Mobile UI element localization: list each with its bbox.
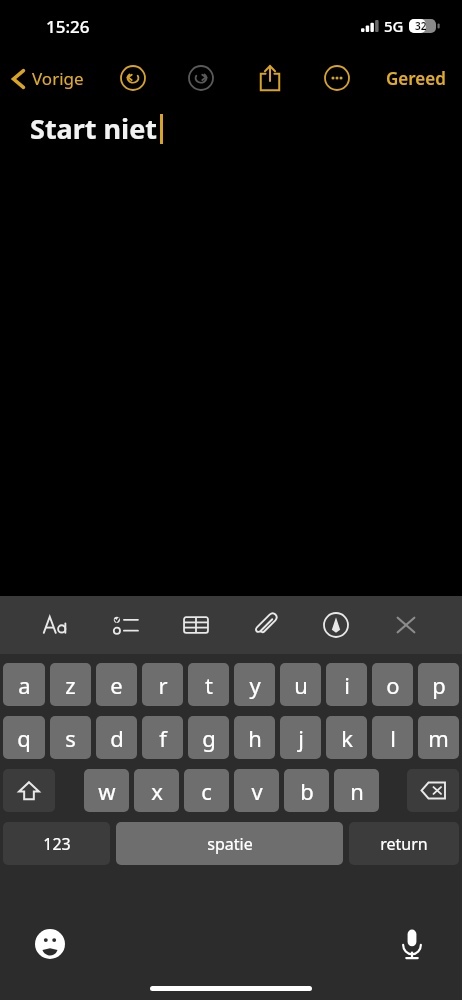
staticText: o xyxy=(386,670,400,700)
staticText: a xyxy=(18,670,31,700)
staticText: 15:26 xyxy=(46,15,90,38)
button[interactable]: p xyxy=(418,663,459,706)
button[interactable]: e xyxy=(96,663,137,706)
button[interactable]: l xyxy=(372,716,413,759)
button[interactable]: return xyxy=(349,822,459,865)
staticText: v xyxy=(251,776,263,806)
staticText: f xyxy=(159,723,167,753)
button[interactable]: Dictation xyxy=(390,922,434,966)
staticText: z xyxy=(65,670,76,700)
button[interactable]: y xyxy=(234,663,275,706)
button[interactable]: x xyxy=(134,769,179,812)
button[interactable]: spatie xyxy=(116,822,343,865)
button[interactable]: Text format xyxy=(34,603,78,647)
button[interactable]: c xyxy=(184,769,229,812)
staticText: l xyxy=(390,723,396,753)
staticText: m xyxy=(428,723,449,753)
button[interactable]: u xyxy=(280,663,321,706)
button[interactable]: o xyxy=(372,663,413,706)
button[interactable]: j xyxy=(280,716,321,759)
button[interactable]: t xyxy=(188,663,229,706)
button[interactable]: r xyxy=(142,663,183,706)
staticText: Vorige xyxy=(32,67,84,90)
button[interactable]: w xyxy=(84,769,129,812)
button[interactable]: m xyxy=(418,716,459,759)
staticText: g xyxy=(202,723,216,753)
staticText: 5G xyxy=(384,16,404,36)
button[interactable]: f xyxy=(142,716,183,759)
button[interactable]: q xyxy=(3,716,45,759)
staticText: return xyxy=(380,833,428,855)
button[interactable]: g xyxy=(188,716,229,759)
button[interactable]: v xyxy=(234,769,279,812)
staticText: spatie xyxy=(207,833,253,855)
button[interactable]: Share xyxy=(248,56,292,100)
staticText: w xyxy=(98,776,116,806)
staticText: h xyxy=(248,723,262,753)
button[interactable]: h xyxy=(234,716,275,759)
button[interactable]: 123 xyxy=(3,822,110,865)
button[interactable]: z xyxy=(50,663,91,706)
staticText: x xyxy=(151,776,163,806)
button[interactable]: Attach xyxy=(244,603,288,647)
button[interactable]: Gereed xyxy=(380,61,452,96)
staticText: Start niet xyxy=(30,110,158,147)
button[interactable]: Close keyboard xyxy=(384,603,428,647)
staticText: n xyxy=(350,776,364,806)
staticText: k xyxy=(341,723,353,753)
staticText: t xyxy=(205,670,213,700)
button[interactable]: n xyxy=(334,769,379,812)
staticText: 32 xyxy=(415,19,427,33)
button[interactable]: Vorige xyxy=(6,61,90,96)
button[interactable]: k xyxy=(326,716,367,759)
button[interactable]: Undo xyxy=(112,57,154,99)
staticText: Gereed xyxy=(386,67,446,90)
button[interactable]: d xyxy=(96,716,137,759)
button[interactable]: i xyxy=(326,663,367,706)
staticText: p xyxy=(432,670,446,700)
button[interactable]: a xyxy=(3,663,45,706)
staticText: r xyxy=(158,670,168,700)
button[interactable]: s xyxy=(50,716,91,759)
button[interactable]: Backspace xyxy=(407,769,459,812)
staticText: i xyxy=(344,670,350,700)
button[interactable]: Redo xyxy=(180,57,222,99)
button[interactable]: Emoji xyxy=(28,922,72,966)
staticText: d xyxy=(110,723,124,753)
button[interactable]: b xyxy=(284,769,329,812)
button[interactable]: Table xyxy=(174,603,218,647)
button[interactable]: Checklist xyxy=(104,603,148,647)
button[interactable]: Markup xyxy=(314,603,358,647)
staticText: q xyxy=(17,723,31,753)
staticText: y xyxy=(249,670,261,700)
staticText: e xyxy=(110,670,123,700)
staticText: s xyxy=(65,723,76,753)
staticText: j xyxy=(298,723,304,753)
staticText: c xyxy=(201,776,212,806)
staticText: b xyxy=(300,776,314,806)
staticText: 123 xyxy=(43,833,71,855)
staticText: u xyxy=(294,670,308,700)
button[interactable]: Shift xyxy=(3,769,55,812)
button[interactable]: More xyxy=(316,57,358,99)
